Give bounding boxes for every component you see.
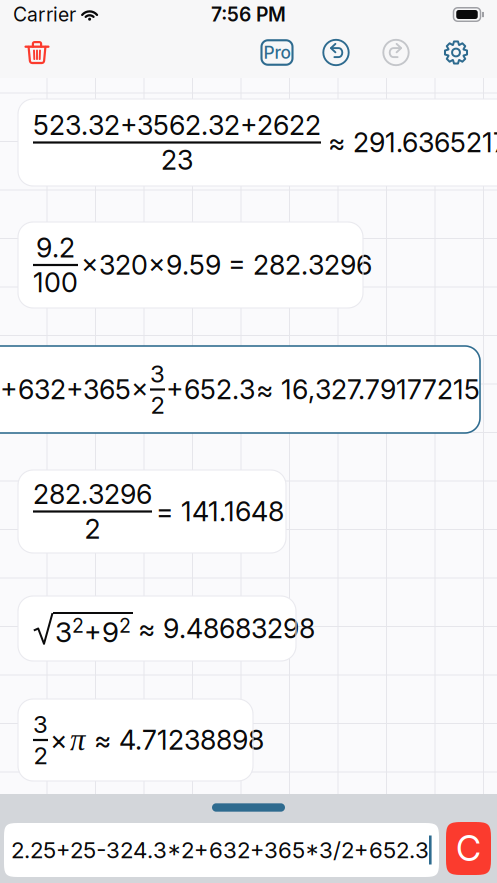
button[interactable]: 9.2 (18, 222, 363, 308)
staticText: = 141.1648 (156, 495, 284, 528)
staticText: 3 (33, 710, 48, 739)
staticText: 2 (33, 741, 47, 770)
staticText: 100 (33, 266, 78, 299)
staticText: ×320×9.59 = 282.3296 (81, 249, 372, 281)
staticText: 92 (102, 614, 131, 649)
staticText: 2 (84, 513, 100, 545)
button[interactable]: Undo (314, 30, 358, 74)
staticText: 23 (161, 144, 193, 176)
button[interactable]: 282.3296 (18, 470, 286, 553)
staticText: 2 (150, 391, 164, 420)
staticText: 7:56 PM (211, 3, 286, 26)
button[interactable]: 523.32+3562.32+2622 (18, 99, 497, 186)
staticText: +632+365× (0, 373, 149, 406)
button[interactable]: 3 (18, 699, 253, 781)
staticText: 3 (150, 359, 165, 388)
button[interactable]: Settings (434, 30, 478, 74)
staticText: ≈ 9.48683298 (138, 612, 315, 645)
button[interactable]: Redo (374, 30, 418, 74)
staticText: ≈ 4.71238898 (87, 724, 264, 756)
button[interactable]: 32 (18, 596, 296, 661)
button[interactable]: +632+365× (0, 346, 480, 433)
staticText: 2.25+25-324.3*2+632+365*3/2+652.3 (11, 836, 429, 863)
staticText: ≈ 16,327.79177215 (256, 373, 480, 406)
button[interactable]: Clear all (14, 29, 60, 75)
staticText: Pro (263, 42, 290, 63)
button[interactable]: C (446, 822, 491, 875)
staticText: ≈ 291.63652174 (328, 126, 497, 159)
staticText: + (84, 615, 102, 648)
staticText: +652.3 (166, 373, 255, 406)
staticText: × (50, 724, 68, 756)
staticText: C (456, 827, 481, 869)
staticText: 32 (55, 614, 84, 649)
staticText: π (70, 723, 85, 757)
staticText: 282.3296 (33, 478, 152, 510)
staticText: 9.2 (36, 231, 75, 264)
staticText: Carrier (13, 3, 76, 26)
button[interactable]: Pro (255, 30, 299, 74)
staticText: 523.32+3562.32+2622 (33, 109, 321, 141)
